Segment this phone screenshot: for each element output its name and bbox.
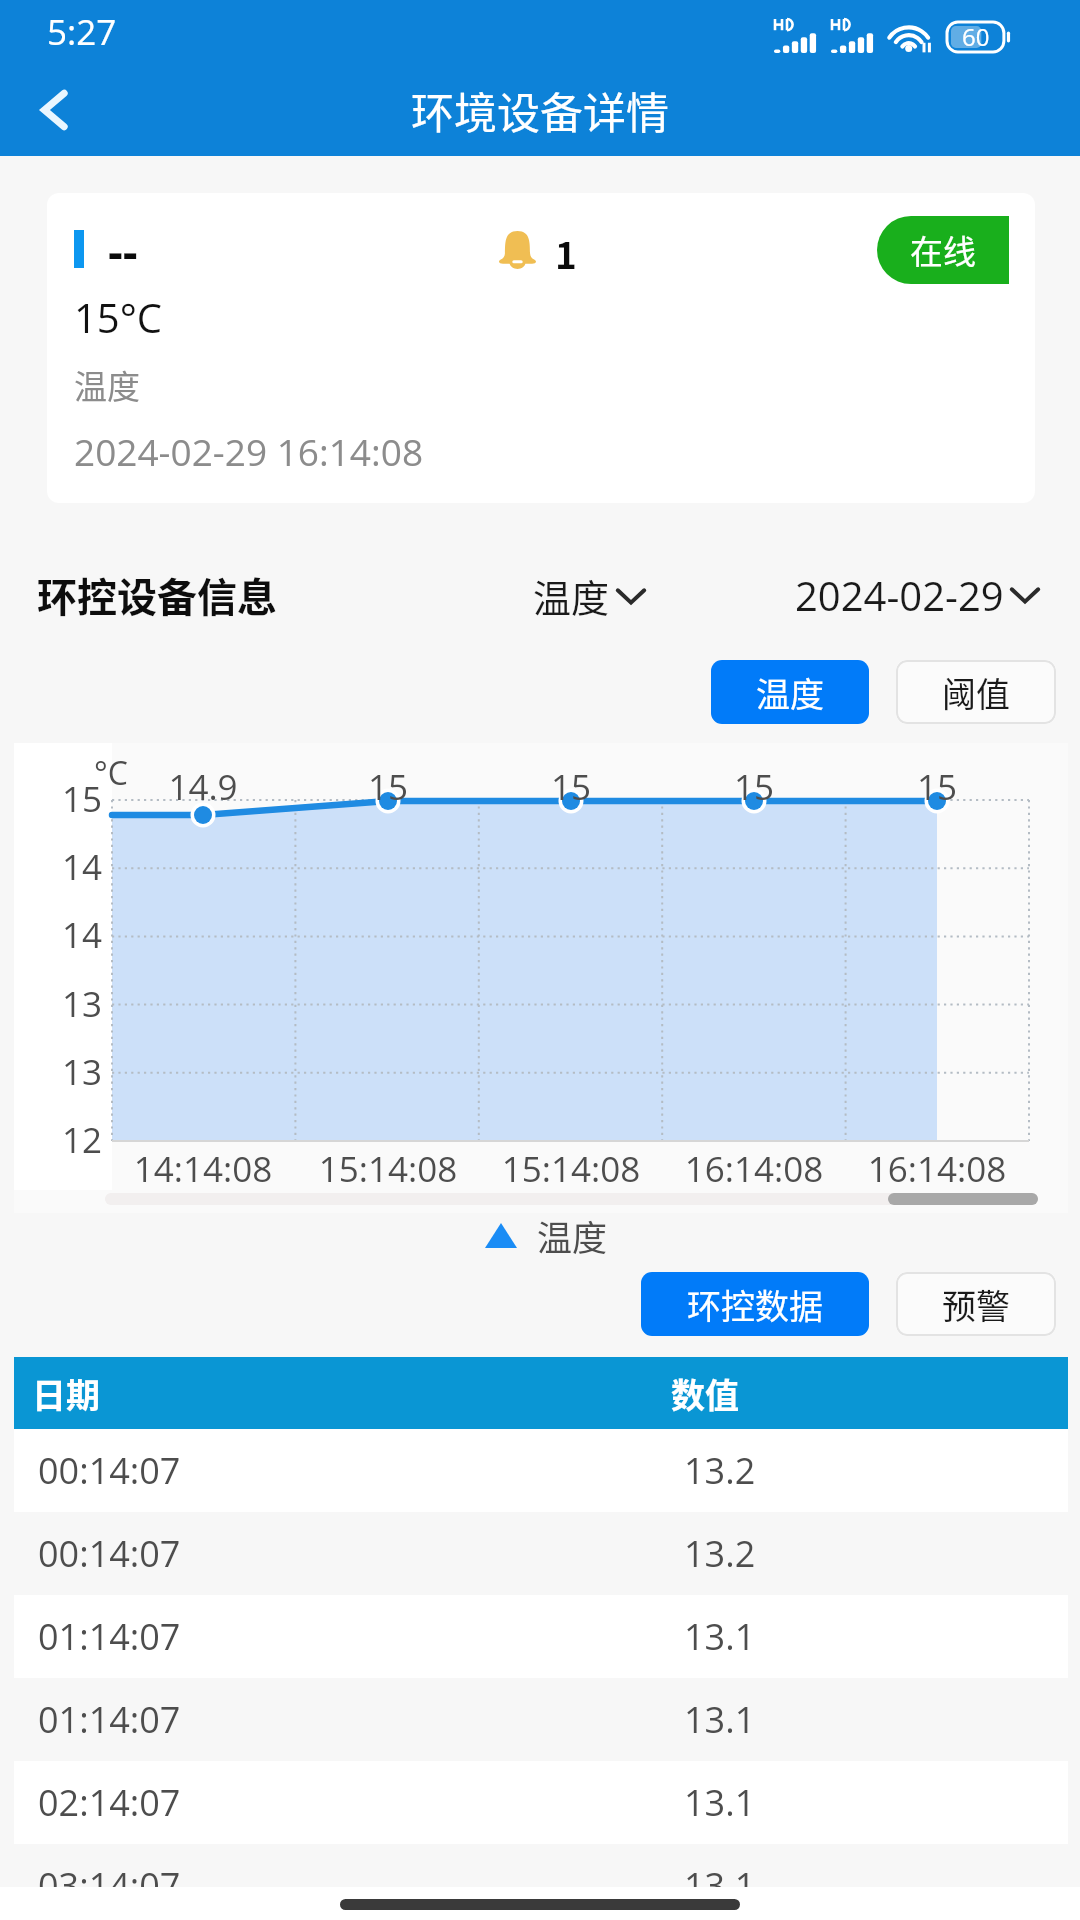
staticText: 01:14:07 (38, 1695, 181, 1744)
staticText: 13.1 (684, 1612, 756, 1661)
button[interactable]: -- (47, 193, 1035, 503)
button[interactable]: 00:14:07 (14, 1429, 1068, 1512)
staticText: 16:14:08 (674, 1145, 834, 1193)
staticText: 00:14:07 (38, 1529, 181, 1578)
staticText: 14 (22, 911, 102, 959)
staticText: 13 (22, 1048, 102, 1096)
button[interactable]: Back (14, 70, 94, 150)
staticText: 15 (22, 775, 102, 823)
staticText: 15:14:08 (491, 1145, 651, 1193)
staticText: 12 (22, 1116, 102, 1164)
staticText: 阈值 (942, 668, 1010, 717)
staticText: 13.1 (684, 1695, 756, 1744)
staticText: 03:14:07 (38, 1861, 181, 1910)
button[interactable]: 温度 (533, 568, 646, 623)
staticText: 02:14:07 (38, 1778, 181, 1827)
staticText: 13 (22, 980, 102, 1028)
button[interactable]: 温度 (711, 660, 869, 724)
staticText: 13.2 (684, 1446, 756, 1495)
staticText: 1 (555, 226, 577, 280)
button[interactable]: 00:14:07 (14, 1512, 1068, 1595)
staticText: 01:14:07 (38, 1612, 181, 1661)
staticText: 16:14:08 (857, 1145, 1017, 1193)
staticText: 13.2 (684, 1529, 756, 1578)
button[interactable]: 01:14:07 (14, 1595, 1068, 1678)
staticText: 温度 (756, 668, 824, 717)
staticText: 环控设备信息 (37, 566, 277, 624)
staticText: 15 (877, 763, 997, 811)
button[interactable]: 预警 (896, 1272, 1056, 1336)
staticText: 日期 (32, 1369, 100, 1418)
staticText: 13.1 (684, 1861, 756, 1910)
staticText: 00:14:07 (38, 1446, 181, 1495)
staticText: °C (94, 751, 128, 795)
staticText: 15 (511, 763, 631, 811)
staticText: 15 (328, 763, 448, 811)
button[interactable]: 阈值 (896, 660, 1056, 724)
staticText: 环境设备详情 (411, 79, 669, 141)
staticText: 在线 (910, 226, 976, 274)
staticText: 60 (962, 20, 990, 52)
staticText: 温度 (537, 1210, 608, 1261)
staticText: 15:14:08 (308, 1145, 468, 1193)
button[interactable]: 在线 (877, 216, 1009, 284)
staticText: 13.1 (684, 1778, 756, 1827)
staticText: 14 (22, 843, 102, 891)
staticText: 5:27 (47, 8, 117, 56)
staticText: -- (108, 220, 138, 283)
staticText: 2024-02-29 16:14:08 (74, 426, 424, 476)
staticText: 环控数据 (687, 1280, 823, 1329)
staticText: 14.9 (143, 763, 263, 811)
button[interactable]: 01:14:07 (14, 1678, 1068, 1761)
button[interactable]: 环控数据 (641, 1272, 869, 1336)
staticText: 数值 (671, 1369, 739, 1418)
staticText: 预警 (942, 1280, 1010, 1329)
staticText: 2024-02-29 (795, 568, 1004, 622)
staticText: 14:14:08 (123, 1145, 283, 1193)
button[interactable]: 03:14:07 (14, 1844, 1068, 1920)
button[interactable]: 2024-02-29 (795, 568, 1040, 622)
staticText: 15 (694, 763, 814, 811)
button[interactable]: 02:14:07 (14, 1761, 1068, 1844)
staticText: 温度 (533, 568, 610, 623)
staticText: 温度 (74, 361, 140, 409)
staticText: 15°C (74, 290, 163, 344)
